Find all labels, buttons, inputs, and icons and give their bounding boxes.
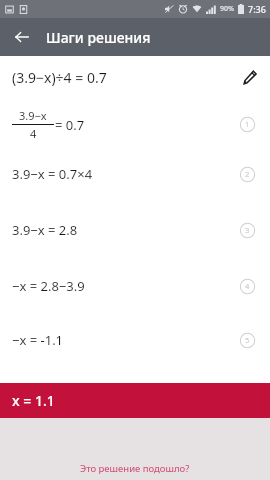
staticText: −x = 2.8−3.9 bbox=[12, 277, 85, 295]
staticText: 3.9−x = 0.7×4 bbox=[12, 165, 93, 183]
button[interactable]: Step 1 bbox=[238, 115, 256, 133]
staticText: 1 bbox=[245, 119, 250, 129]
staticText: (3.9−x)÷4 = 0.7 bbox=[12, 68, 107, 87]
button[interactable]: Step 4 bbox=[238, 277, 256, 295]
staticText: 3 bbox=[245, 225, 250, 235]
staticText: Шаги решения bbox=[46, 28, 151, 47]
staticText: 3.9−x = 2.8 bbox=[12, 221, 78, 239]
button[interactable]: 3.9−x = 0.7×4 bbox=[0, 164, 270, 184]
button[interactable]: 3.9−x bbox=[0, 98, 270, 150]
button[interactable]: 3.9−x = 2.8 bbox=[0, 220, 270, 240]
button[interactable]: Step 2 bbox=[238, 165, 256, 183]
staticText: 4 bbox=[245, 281, 250, 291]
staticText: 5 bbox=[245, 335, 250, 345]
staticText: = 0.7 bbox=[55, 116, 85, 134]
button[interactable]: x = 1.1 bbox=[0, 383, 270, 418]
button[interactable]: −x = 2.8−3.9 bbox=[0, 276, 270, 296]
staticText: 3.9−x bbox=[19, 108, 47, 123]
staticText: 2 bbox=[245, 169, 250, 179]
staticText: Это решение подошло? bbox=[80, 462, 190, 475]
staticText: x = 1.1 bbox=[12, 391, 55, 410]
button[interactable]: Back bbox=[6, 21, 38, 53]
button[interactable]: −x = -1.1 bbox=[0, 330, 270, 350]
staticText: −x = -1.1 bbox=[12, 331, 64, 349]
staticText: 7:36 bbox=[248, 3, 266, 15]
staticText: 4 bbox=[30, 126, 37, 141]
button[interactable]: Это решение подошло? bbox=[70, 458, 200, 479]
button[interactable]: Step 3 bbox=[238, 221, 256, 239]
staticText: 90% bbox=[220, 4, 234, 14]
button[interactable]: Edit equation bbox=[234, 62, 264, 92]
button[interactable]: Step 5 bbox=[238, 331, 256, 349]
